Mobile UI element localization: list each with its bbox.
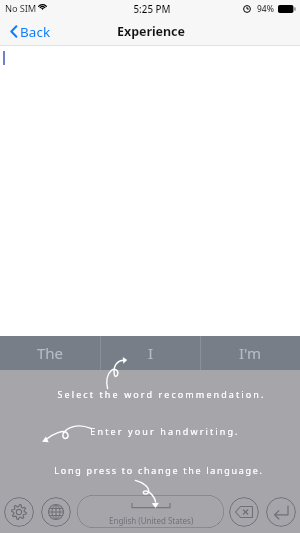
staticText: 94% <box>257 3 274 15</box>
button[interactable]: Delete <box>229 497 259 527</box>
staticText: Select the word recommendation. <box>57 388 266 400</box>
button[interactable]: I'm <box>201 336 300 370</box>
staticText: I'm <box>239 343 262 363</box>
staticText: Enter your handwriting. <box>90 425 240 437</box>
staticText: I <box>148 343 154 363</box>
staticText: 5:25 PM <box>2 3 300 16</box>
button[interactable]: I <box>101 336 200 370</box>
button[interactable]: English (United States) <box>77 495 224 528</box>
button[interactable]: Back <box>4 20 56 46</box>
button[interactable]: Return <box>266 497 296 527</box>
staticText: The <box>37 343 64 363</box>
button[interactable]: Settings <box>4 497 34 527</box>
staticText: No SIM <box>5 2 37 15</box>
button[interactable]: The <box>0 336 100 370</box>
staticText: Experience <box>117 23 185 40</box>
staticText: Long press to change the language. <box>54 464 264 476</box>
button[interactable]: Change language <box>41 497 71 527</box>
staticText: Back <box>20 23 51 41</box>
staticText: English (United States) <box>109 515 194 526</box>
